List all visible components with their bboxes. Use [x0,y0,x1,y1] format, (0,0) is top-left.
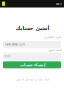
button[interactable]: إنشاء حساب [0,61,64,68]
staticText: ▮▮▮ ▰ [56,2,62,5]
button[interactable]: لديك حساب؟ تسجيل الدخول [15,78,48,81]
staticText: name@mail.com [5,43,25,46]
staticText: لديك حساب؟ تسجيل الدخول [15,78,48,81]
staticText: إنشاء حساب [19,62,44,67]
staticText: البريد الإلكتروني [43,35,61,38]
staticText: كلمة المرور [48,48,61,51]
staticText: أنشئ حسابك [15,25,49,31]
staticText: •••••• [5,55,11,58]
